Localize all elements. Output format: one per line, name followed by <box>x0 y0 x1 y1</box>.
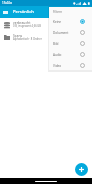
button[interactable]: Video <box>49 60 92 71</box>
button[interactable]: Audio <box>49 49 92 60</box>
staticText: Persönlich <box>13 9 34 15</box>
staticText: Filtern <box>53 10 63 14</box>
staticText: Keine <box>53 20 62 24</box>
button[interactable]: Scans <box>0 31 92 44</box>
staticText: 15:44 <box>2 1 10 5</box>
staticText: Alphabetisch · 8 Ordner <box>13 37 42 41</box>
staticText: verbraucht <box>13 20 31 25</box>
button[interactable]: verbraucht <box>0 18 92 31</box>
staticText: Bild <box>53 42 59 46</box>
button[interactable]: Bild <box>49 38 92 49</box>
staticText: Scans <box>13 33 23 38</box>
button[interactable]: Dokument <box>49 27 92 38</box>
staticText: Dokument <box>53 31 69 35</box>
button[interactable]: Add <box>75 163 88 176</box>
button[interactable]: Open navigation menu <box>0 7 11 18</box>
staticText: Audio <box>53 53 62 57</box>
button[interactable]: Keine <box>49 16 92 27</box>
staticText: Video <box>53 64 62 68</box>
staticText: 0 B, insgesamt 4,66 GB <box>13 24 41 28</box>
